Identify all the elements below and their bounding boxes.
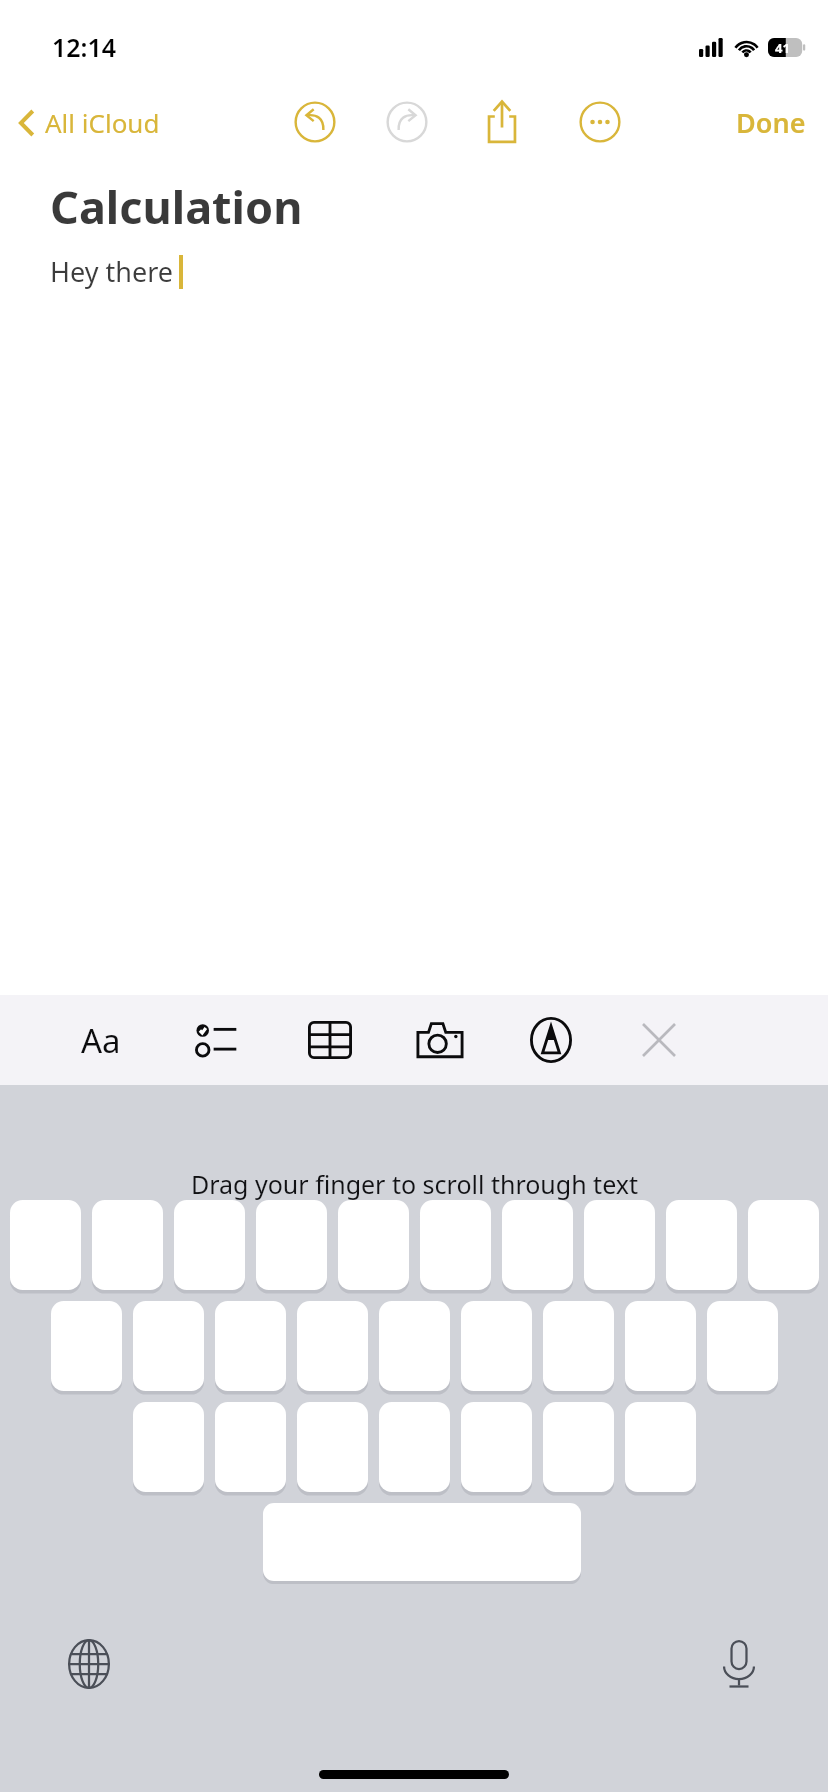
button[interactable]: Key [215,1301,286,1391]
button[interactable]: Table [291,1001,369,1079]
button[interactable]: Key [461,1402,532,1492]
button[interactable]: Key [51,1301,122,1391]
button[interactable]: Key [707,1301,778,1391]
button[interactable]: Key [256,1200,327,1290]
button[interactable]: Undo [288,95,342,149]
button[interactable]: Key [584,1200,655,1290]
button[interactable]: Key [379,1402,450,1492]
button[interactable]: Key [133,1402,204,1492]
staticText: Hey there [50,253,173,290]
button[interactable]: Key [502,1200,573,1290]
button[interactable]: Key [215,1402,286,1492]
button[interactable]: Format text [62,1001,140,1079]
button[interactable]: Key [338,1200,409,1290]
button[interactable]: Key [625,1402,696,1492]
button[interactable]: Key [297,1402,368,1492]
button[interactable]: Key [174,1200,245,1290]
button[interactable]: Close keyboard [620,1001,698,1079]
staticText: Calculation [50,176,303,237]
staticText: Aa [81,1018,121,1063]
button[interactable]: Key [10,1200,81,1290]
button[interactable]: Space [263,1503,581,1581]
staticText: 12:14 [52,30,117,64]
button[interactable]: Key [625,1301,696,1391]
button[interactable]: Share [475,95,529,149]
button[interactable]: Camera [401,1001,479,1079]
button[interactable]: More options [573,95,627,149]
button[interactable]: Key [92,1200,163,1290]
button[interactable]: Key [666,1200,737,1290]
button[interactable]: Key [379,1301,450,1391]
button[interactable]: All iCloud [0,99,170,146]
button[interactable]: Markup [512,1001,590,1079]
button[interactable]: Key [748,1200,819,1290]
staticText: Done [736,104,806,141]
staticText: Drag your finger to scroll through text [191,1167,638,1201]
button[interactable]: Key [461,1301,532,1391]
button[interactable]: Checklist [178,1001,256,1079]
button[interactable]: Key [543,1301,614,1391]
button[interactable]: Key [420,1200,491,1290]
staticText: All iCloud [45,105,160,140]
button[interactable]: Key [297,1301,368,1391]
button[interactable]: Redo [380,95,434,149]
staticText: 41 [775,39,790,57]
button[interactable]: Switch keyboard [58,1633,120,1695]
button[interactable]: Key [543,1402,614,1492]
button[interactable]: Key [133,1301,204,1391]
button[interactable]: Done [714,96,828,149]
button[interactable]: Dictate [708,1633,770,1695]
